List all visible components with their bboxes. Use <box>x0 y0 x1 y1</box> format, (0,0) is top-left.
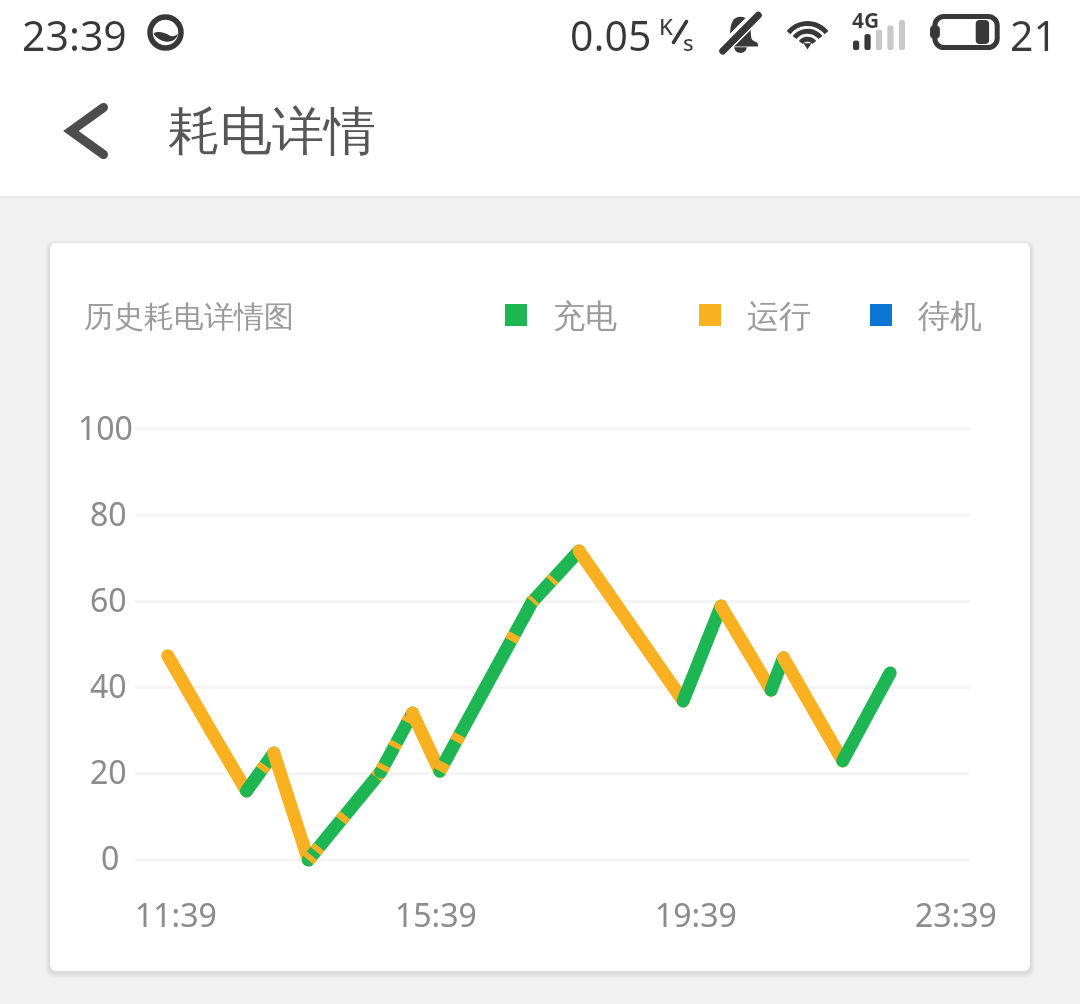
staticText: 0.05 <box>570 7 652 63</box>
staticText: 历史耗电详情图 <box>84 298 294 336</box>
staticText: 耗电详情 <box>168 99 376 165</box>
staticText: 23:39 <box>915 893 997 937</box>
button[interactable]: 待机 <box>870 296 982 334</box>
staticText: 待机 <box>918 296 982 334</box>
staticText: 100 <box>78 406 133 450</box>
staticText: 23:39 <box>22 7 127 63</box>
staticText: 11:39 <box>135 893 217 937</box>
staticText: K <box>659 11 673 41</box>
staticText: 40 <box>90 664 127 708</box>
staticText: 20 <box>90 750 127 794</box>
button[interactable]: 充电 <box>505 296 617 334</box>
staticText: 80 <box>90 492 127 536</box>
staticText: 15:39 <box>395 893 477 937</box>
staticText: 19:39 <box>655 893 737 937</box>
staticText: 21 <box>1010 7 1057 63</box>
staticText: 充电 <box>553 296 617 334</box>
button[interactable]: Back <box>42 87 130 175</box>
staticText: 60 <box>90 578 127 622</box>
staticText: 4G <box>852 6 880 35</box>
staticText: 运行 <box>747 296 811 334</box>
staticText: s <box>683 27 694 57</box>
staticText: 0 <box>101 836 120 880</box>
button[interactable]: 历史耗电详情图 <box>50 243 1030 971</box>
button[interactable]: 运行 <box>699 296 811 334</box>
